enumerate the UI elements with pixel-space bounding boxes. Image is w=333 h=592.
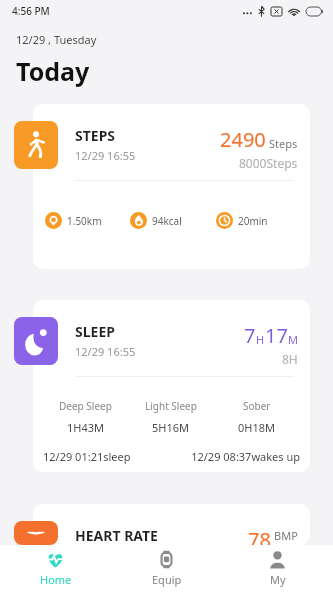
staticText: 12/29 01:21sleep	[43, 449, 171, 464]
staticText: SLEEP	[75, 322, 115, 341]
staticText: Deep Sleep	[59, 399, 112, 413]
staticText: STEPS	[75, 126, 116, 145]
staticText: 94kcal	[152, 214, 182, 228]
staticText: Today	[16, 54, 90, 88]
button[interactable]: STEPS	[0, 104, 333, 276]
other: Steps	[14, 121, 58, 169]
staticText: Steps	[269, 136, 298, 151]
staticText: HEART RATE	[75, 526, 158, 545]
staticText: 1.50km	[67, 214, 102, 228]
staticText: BMP	[274, 528, 298, 543]
other: Heart rate	[14, 521, 58, 545]
staticText: Equip	[152, 572, 182, 587]
staticText: 8000Steps	[239, 155, 298, 171]
staticText: Home	[40, 572, 72, 587]
staticText: 12/29 08:37wakes up	[171, 449, 300, 464]
staticText: 20min	[238, 214, 268, 228]
staticText: 5H16M	[152, 420, 190, 435]
staticText: 4:56 PM	[12, 4, 50, 18]
button[interactable]: Equip	[111, 545, 222, 592]
button[interactable]: Home	[0, 545, 111, 592]
staticText: 12/29 16:55	[75, 344, 136, 359]
staticText: 12/29 16:55	[75, 148, 136, 163]
staticText: 12/29 , Tuesday	[16, 32, 97, 47]
staticText: My	[270, 572, 286, 587]
button[interactable]: SLEEP	[0, 300, 333, 480]
other: Sleep	[14, 317, 58, 365]
staticText: Sober	[243, 399, 271, 413]
staticText: 7	[244, 322, 256, 349]
staticText: 78	[248, 526, 271, 545]
staticText: H	[256, 332, 265, 347]
staticText: 17	[265, 322, 288, 349]
staticText: 8H	[282, 351, 298, 367]
staticText: M	[288, 332, 298, 347]
button[interactable]: HEART RATE	[0, 504, 333, 545]
staticText: Light Sleep	[145, 399, 197, 413]
staticText: 0H18M	[238, 420, 276, 435]
staticText: 1H43M	[67, 420, 105, 435]
staticText: 2490	[220, 126, 266, 153]
button[interactable]: My	[222, 545, 333, 592]
